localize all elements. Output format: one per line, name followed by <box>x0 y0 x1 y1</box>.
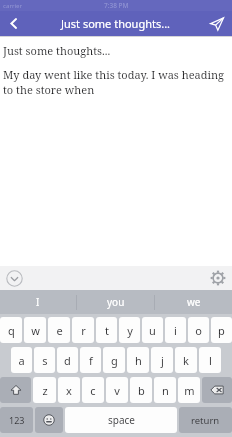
button[interactable]: p <box>211 317 232 343</box>
button[interactable]: space <box>65 407 177 433</box>
staticText: carrier <box>3 2 23 10</box>
button[interactable]: u <box>142 317 163 343</box>
staticText: My day went like this today. I was headi… <box>3 67 228 97</box>
staticText: u <box>149 323 156 338</box>
staticText: o <box>195 323 202 338</box>
staticText: c <box>90 383 96 398</box>
button[interactable]: I <box>0 290 76 314</box>
staticText: w <box>31 323 40 338</box>
staticText: l <box>209 353 212 368</box>
staticText: 123 <box>9 414 25 426</box>
button[interactable]: i <box>165 317 186 343</box>
staticText: 7:38 PM <box>104 1 129 10</box>
button[interactable]: 123 <box>0 407 33 433</box>
staticText: g <box>111 353 118 368</box>
staticText: b <box>138 383 145 398</box>
staticText: Just some thoughts... <box>3 43 111 58</box>
button[interactable]: Emoji <box>35 407 63 433</box>
staticText: f <box>89 353 93 368</box>
button[interactable]: v <box>106 377 128 403</box>
button[interactable]: Keyboard settings <box>210 270 226 286</box>
button[interactable]: z <box>33 377 56 403</box>
staticText: k <box>183 353 189 368</box>
button[interactable]: b <box>130 377 152 403</box>
button[interactable]: r <box>72 317 94 343</box>
staticText: you <box>107 295 125 309</box>
button[interactable]: l <box>199 347 221 373</box>
staticText: i <box>174 323 177 338</box>
button[interactable]: k <box>175 347 197 373</box>
button[interactable]: o <box>188 317 209 343</box>
staticText: we <box>187 295 201 309</box>
staticText: n <box>162 383 169 398</box>
staticText: e <box>56 323 63 338</box>
staticText: m <box>184 383 195 398</box>
staticText: return <box>191 414 220 427</box>
staticText: a <box>18 353 25 368</box>
button[interactable]: m <box>178 377 200 403</box>
button[interactable]: Send <box>202 11 232 36</box>
staticText: r <box>81 323 86 338</box>
button[interactable]: f <box>80 347 101 373</box>
button[interactable]: return <box>179 407 232 433</box>
button[interactable]: Backspace <box>202 377 232 403</box>
staticText: s <box>42 353 48 368</box>
button[interactable]: c <box>82 377 104 403</box>
staticText: x <box>66 383 72 398</box>
button[interactable]: Back <box>0 11 28 36</box>
button[interactable]: x <box>58 377 80 403</box>
button[interactable]: j <box>151 347 173 373</box>
button[interactable]: w <box>24 317 46 343</box>
button[interactable]: s <box>34 347 55 373</box>
staticText: Just some thoughts... <box>61 16 171 31</box>
button[interactable]: Collapse keyboard <box>6 270 23 287</box>
staticText: I <box>36 295 40 309</box>
button[interactable]: y <box>119 317 140 343</box>
staticText: p <box>218 323 225 338</box>
button[interactable]: q <box>0 317 22 343</box>
staticText: h <box>135 353 142 368</box>
button[interactable]: h <box>127 347 149 373</box>
button[interactable]: a <box>11 347 32 373</box>
staticText: y <box>127 323 133 338</box>
button[interactable]: you <box>77 290 154 314</box>
staticText: d <box>64 353 71 368</box>
button[interactable]: g <box>103 347 125 373</box>
staticText: q <box>8 323 15 338</box>
staticText: v <box>114 383 120 398</box>
button[interactable]: e <box>48 317 70 343</box>
staticText: t <box>105 323 109 338</box>
button[interactable]: d <box>57 347 78 373</box>
button[interactable]: t <box>96 317 117 343</box>
button[interactable]: n <box>154 377 176 403</box>
staticText: z <box>42 383 48 398</box>
staticText: j <box>161 353 164 368</box>
button[interactable]: we <box>155 290 232 314</box>
button[interactable]: Shift <box>0 377 31 403</box>
staticText: space <box>108 413 135 427</box>
